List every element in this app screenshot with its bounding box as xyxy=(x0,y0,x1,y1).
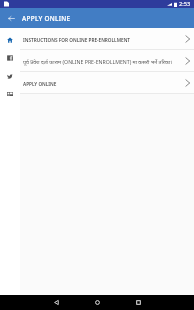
button[interactable]: Home xyxy=(87,295,107,310)
button[interactable]: पूर्व प्रवेश दर्ता फाराम (ONLINE PRE-ENR… xyxy=(20,50,194,71)
button[interactable]: APPLY ONLINE xyxy=(20,72,194,93)
button[interactable]: Home xyxy=(0,31,20,49)
staticText: APPLY ONLINE xyxy=(22,14,71,23)
staticText: INSTRUCTIONS FOR ONLINE PRE-ENROLLMENT xyxy=(23,37,182,43)
button[interactable]: Twitter xyxy=(0,67,20,85)
button[interactable]: Recents xyxy=(128,295,148,310)
button[interactable]: Contact xyxy=(0,85,20,103)
button[interactable]: INSTRUCTIONS FOR ONLINE PRE-ENROLLMENT xyxy=(20,28,194,49)
button[interactable]: Back xyxy=(46,295,66,310)
button[interactable]: Back xyxy=(0,8,22,28)
staticText: APPLY ONLINE xyxy=(23,81,182,87)
staticText: पूर्व प्रवेश दर्ता फाराम (ONLINE PRE-ENR… xyxy=(23,58,182,65)
button[interactable]: Facebook xyxy=(0,49,20,67)
staticText: 2:53 xyxy=(179,0,191,8)
